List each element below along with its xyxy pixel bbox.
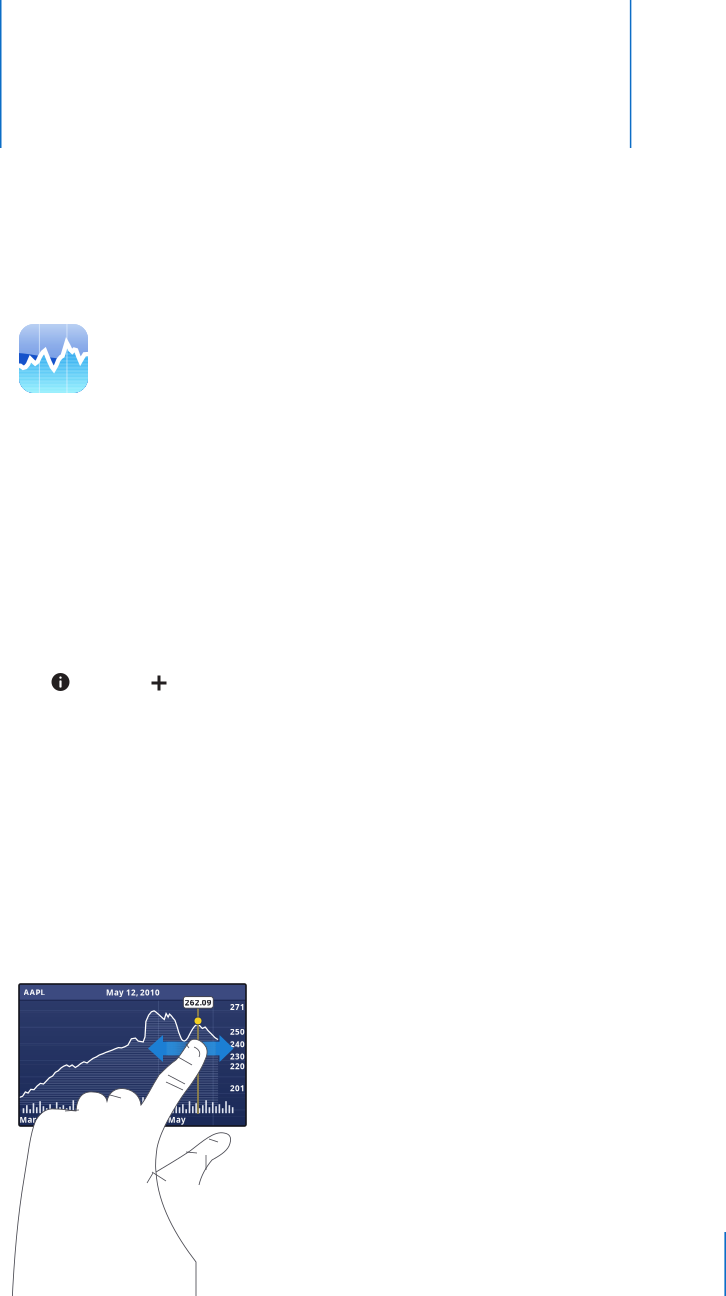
staticText: May (168, 1114, 186, 1125)
staticText: 250 (230, 1026, 245, 1037)
staticText: May 12, 2010 (106, 987, 160, 998)
staticText: 230 (230, 1051, 245, 1062)
staticText: 240 (230, 1039, 245, 1049)
staticText: 271 (230, 1001, 245, 1012)
staticText: Mar (19, 1114, 36, 1125)
staticText: AAPL (23, 987, 44, 998)
staticText: 262.09 (185, 997, 212, 1008)
staticText: 220 (230, 1061, 245, 1071)
button[interactable]: Info (51, 673, 69, 691)
staticText: 201 (230, 1083, 245, 1093)
button[interactable]: Add (151, 675, 166, 690)
